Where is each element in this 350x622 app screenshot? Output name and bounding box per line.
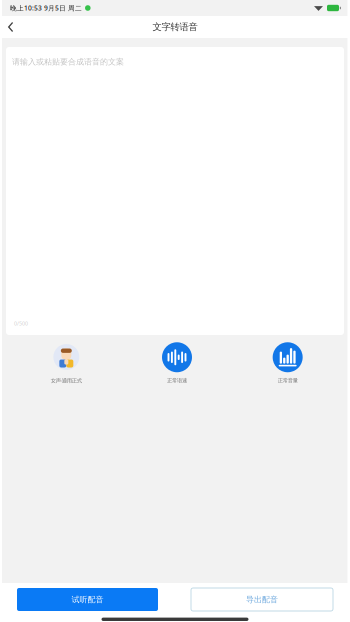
staticText: 正常音量	[278, 377, 298, 384]
staticText: 晚上10:53 9月5日 周二	[10, 4, 82, 12]
staticText: 正常语速	[167, 377, 187, 384]
staticText: 文字转语音	[152, 21, 197, 33]
button[interactable]: Back	[0, 17, 23, 37]
button[interactable]: 导出配音	[191, 588, 333, 611]
staticText: 导出配音	[246, 595, 278, 604]
staticText: 女声·通用正式	[51, 377, 82, 384]
staticText: 0/500	[14, 320, 28, 327]
staticText: 试听配音	[71, 595, 103, 604]
button[interactable]: 正常音量	[232, 342, 343, 384]
button[interactable]: 女声·通用正式	[11, 342, 122, 384]
staticText: 请输入或粘贴要合成语音的文案	[12, 57, 124, 67]
button[interactable]: 正常语速	[122, 342, 232, 384]
button[interactable]: 试听配音	[17, 588, 158, 611]
